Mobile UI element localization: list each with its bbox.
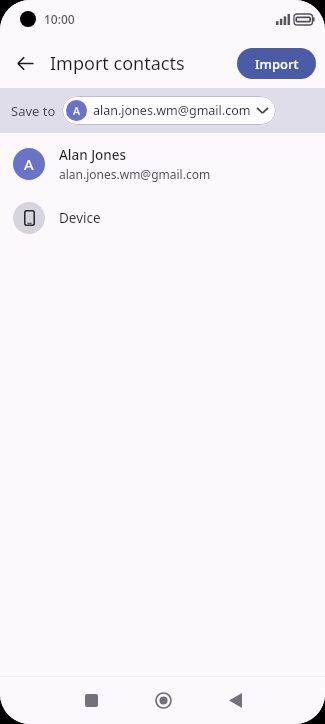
staticText: Device <box>59 209 101 227</box>
button[interactable]: Back <box>6 44 44 82</box>
button[interactable]: Device <box>0 194 325 242</box>
button[interactable]: Import <box>237 48 316 79</box>
staticText: Save to <box>11 102 56 120</box>
button[interactable]: Back <box>206 677 264 724</box>
staticText: A <box>73 103 81 118</box>
button[interactable]: A <box>0 133 325 194</box>
staticText: 10:00 <box>44 11 75 27</box>
staticText: A <box>24 154 34 174</box>
staticText: Import <box>255 55 299 73</box>
button[interactable]: Recent apps <box>62 677 120 724</box>
staticText: Alan Jones <box>59 146 127 164</box>
button[interactable]: Home <box>134 677 192 724</box>
button[interactable]: A <box>62 96 276 125</box>
staticText: alan.jones.wm@gmail.com <box>93 102 251 119</box>
staticText: Import contacts <box>50 51 185 76</box>
staticText: alan.jones.wm@gmail.com <box>59 166 211 182</box>
